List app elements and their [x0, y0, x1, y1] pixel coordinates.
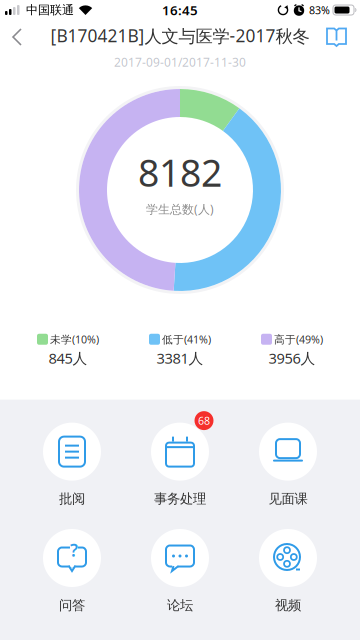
staticText: 问答 [59, 597, 85, 613]
staticText: 8182 [138, 147, 222, 197]
staticText: 视频 [275, 597, 301, 613]
button[interactable] [0, 25, 28, 49]
staticText: 批阅 [59, 491, 85, 507]
button[interactable]: 见面课 [234, 423, 342, 507]
button[interactable] [326, 27, 360, 46]
staticText: 见面课 [268, 491, 307, 507]
button[interactable]: 68 [126, 423, 234, 507]
staticText: 高于(49%) [274, 332, 323, 346]
button[interactable]: 批阅 [18, 423, 126, 507]
staticText: 中国联通 [26, 3, 74, 17]
staticText: 3956人 [268, 348, 315, 368]
staticText: 事务处理 [154, 491, 206, 507]
button[interactable]: ? [18, 529, 126, 613]
staticText: 845人 [48, 348, 87, 368]
staticText: 83% [309, 3, 330, 17]
staticText: ? [70, 538, 78, 561]
staticText: 论坛 [167, 597, 193, 613]
staticText: 68 [198, 413, 210, 428]
button[interactable]: 视频 [234, 529, 342, 613]
staticText: 学生总数(人) [146, 201, 214, 217]
button[interactable]: 论坛 [126, 529, 234, 613]
staticText: 低于(41%) [162, 332, 211, 346]
staticText: [B170421B]人文与医学-2017秋冬 [50, 24, 309, 47]
staticText: 2017-09-01/2017-11-30 [114, 54, 246, 70]
staticText: 16:45 [162, 1, 198, 19]
staticText: 未学(10%) [50, 332, 99, 346]
staticText: 3381人 [156, 348, 203, 368]
